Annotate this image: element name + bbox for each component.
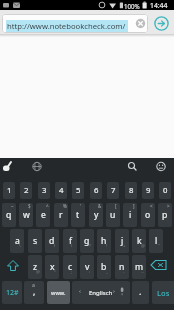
button[interactable]: 4 bbox=[55, 182, 67, 199]
button[interactable]: h bbox=[97, 229, 111, 253]
staticText: ] bbox=[133, 203, 135, 209]
button[interactable]: d bbox=[45, 229, 59, 253]
staticText: 14:44 bbox=[150, 1, 168, 10]
staticText: 5 bbox=[76, 185, 81, 196]
staticText: < bbox=[150, 203, 153, 209]
staticText: f bbox=[69, 235, 72, 247]
button[interactable]: http://www.notebookcheck.com/ bbox=[2, 14, 148, 33]
button[interactable]: www. bbox=[47, 281, 70, 304]
staticText: ' bbox=[36, 243, 37, 249]
button[interactable] bbox=[54, 203, 68, 227]
staticText: : bbox=[89, 269, 91, 275]
button[interactable]: g bbox=[80, 229, 94, 253]
staticText: ° bbox=[54, 269, 56, 275]
staticText: ‹ bbox=[79, 287, 81, 295]
staticText: 3 bbox=[42, 185, 47, 196]
staticText: " bbox=[158, 243, 160, 249]
button[interactable] bbox=[89, 203, 103, 227]
staticText: 100% bbox=[124, 2, 140, 10]
button[interactable] bbox=[132, 281, 149, 304]
button[interactable] bbox=[72, 281, 130, 304]
button[interactable]: 2 bbox=[20, 182, 32, 199]
button[interactable] bbox=[153, 15, 170, 32]
staticText: j bbox=[121, 235, 124, 247]
staticText: q bbox=[6, 209, 12, 221]
staticText: \ bbox=[19, 243, 21, 249]
button[interactable] bbox=[148, 255, 174, 279]
staticText: d bbox=[49, 235, 55, 247]
button[interactable]: z bbox=[28, 255, 42, 279]
staticText: _ bbox=[106, 269, 108, 275]
button[interactable]: 5 bbox=[72, 182, 84, 199]
button[interactable] bbox=[123, 203, 137, 227]
button[interactable]: 3 bbox=[38, 182, 50, 199]
staticText: ' bbox=[80, 203, 82, 209]
staticText: ^ bbox=[46, 203, 49, 209]
staticText: , bbox=[33, 286, 36, 298]
button[interactable] bbox=[158, 203, 172, 227]
staticText: + bbox=[123, 243, 126, 249]
staticText: Los bbox=[157, 288, 170, 298]
staticText: u bbox=[110, 209, 116, 221]
staticText: a bbox=[32, 282, 35, 289]
staticText: ~ bbox=[11, 203, 14, 209]
staticText: 1 bbox=[7, 185, 12, 196]
staticText: x bbox=[50, 261, 55, 273]
button[interactable]: 8 bbox=[125, 182, 137, 199]
button[interactable]: n bbox=[115, 255, 129, 279]
button[interactable]: f bbox=[63, 229, 77, 253]
staticText: z bbox=[33, 261, 38, 273]
staticText: i bbox=[129, 209, 132, 221]
staticText: … bbox=[141, 269, 145, 275]
staticText: p bbox=[162, 209, 168, 221]
button[interactable]: 9 bbox=[142, 182, 154, 199]
button[interactable] bbox=[141, 203, 155, 227]
staticText: ! bbox=[106, 243, 108, 249]
staticText: ; bbox=[71, 269, 73, 275]
button[interactable]: x bbox=[45, 255, 59, 279]
button[interactable] bbox=[2, 203, 16, 227]
staticText: [ bbox=[115, 203, 117, 209]
staticText: o bbox=[145, 209, 151, 221]
button[interactable]: a bbox=[10, 229, 24, 253]
staticText: g bbox=[84, 235, 90, 247]
button[interactable] bbox=[19, 203, 33, 227]
button[interactable]: c bbox=[63, 255, 77, 279]
staticText: ( bbox=[54, 243, 56, 249]
button[interactable]: 1 bbox=[3, 182, 15, 199]
staticText: h bbox=[101, 235, 107, 247]
staticText: 9 bbox=[146, 185, 151, 196]
button[interactable] bbox=[0, 255, 26, 279]
button[interactable]: 6 bbox=[90, 182, 102, 199]
button[interactable]: 7 bbox=[107, 182, 119, 199]
button[interactable] bbox=[106, 203, 120, 227]
staticText: c bbox=[68, 261, 73, 273]
button[interactable]: m bbox=[132, 255, 146, 279]
staticText: 2 bbox=[24, 185, 29, 196]
button[interactable]: s bbox=[28, 229, 42, 253]
button[interactable] bbox=[24, 281, 44, 304]
staticText: . bbox=[139, 285, 142, 297]
button[interactable]: j bbox=[115, 229, 129, 253]
button[interactable]: v bbox=[80, 255, 94, 279]
staticText: 6 bbox=[94, 185, 99, 196]
staticText: a bbox=[15, 235, 20, 247]
button[interactable] bbox=[71, 203, 85, 227]
staticText: m bbox=[135, 261, 144, 273]
staticText: @ bbox=[141, 243, 145, 249]
staticText: 7 bbox=[111, 185, 116, 196]
staticText: @ bbox=[36, 269, 40, 275]
staticText: s bbox=[33, 235, 38, 247]
button[interactable] bbox=[2, 281, 22, 304]
staticText: Englisch bbox=[89, 289, 113, 297]
button[interactable]: l bbox=[149, 229, 163, 253]
button[interactable]: b bbox=[97, 255, 111, 279]
button[interactable] bbox=[36, 203, 50, 227]
button[interactable] bbox=[152, 281, 174, 304]
staticText: e bbox=[41, 209, 46, 221]
staticText: n bbox=[119, 261, 125, 273]
staticText: 0 bbox=[163, 185, 168, 196]
button[interactable]: 0 bbox=[159, 182, 171, 199]
staticText: www. bbox=[51, 289, 66, 297]
button[interactable]: k bbox=[132, 229, 146, 253]
